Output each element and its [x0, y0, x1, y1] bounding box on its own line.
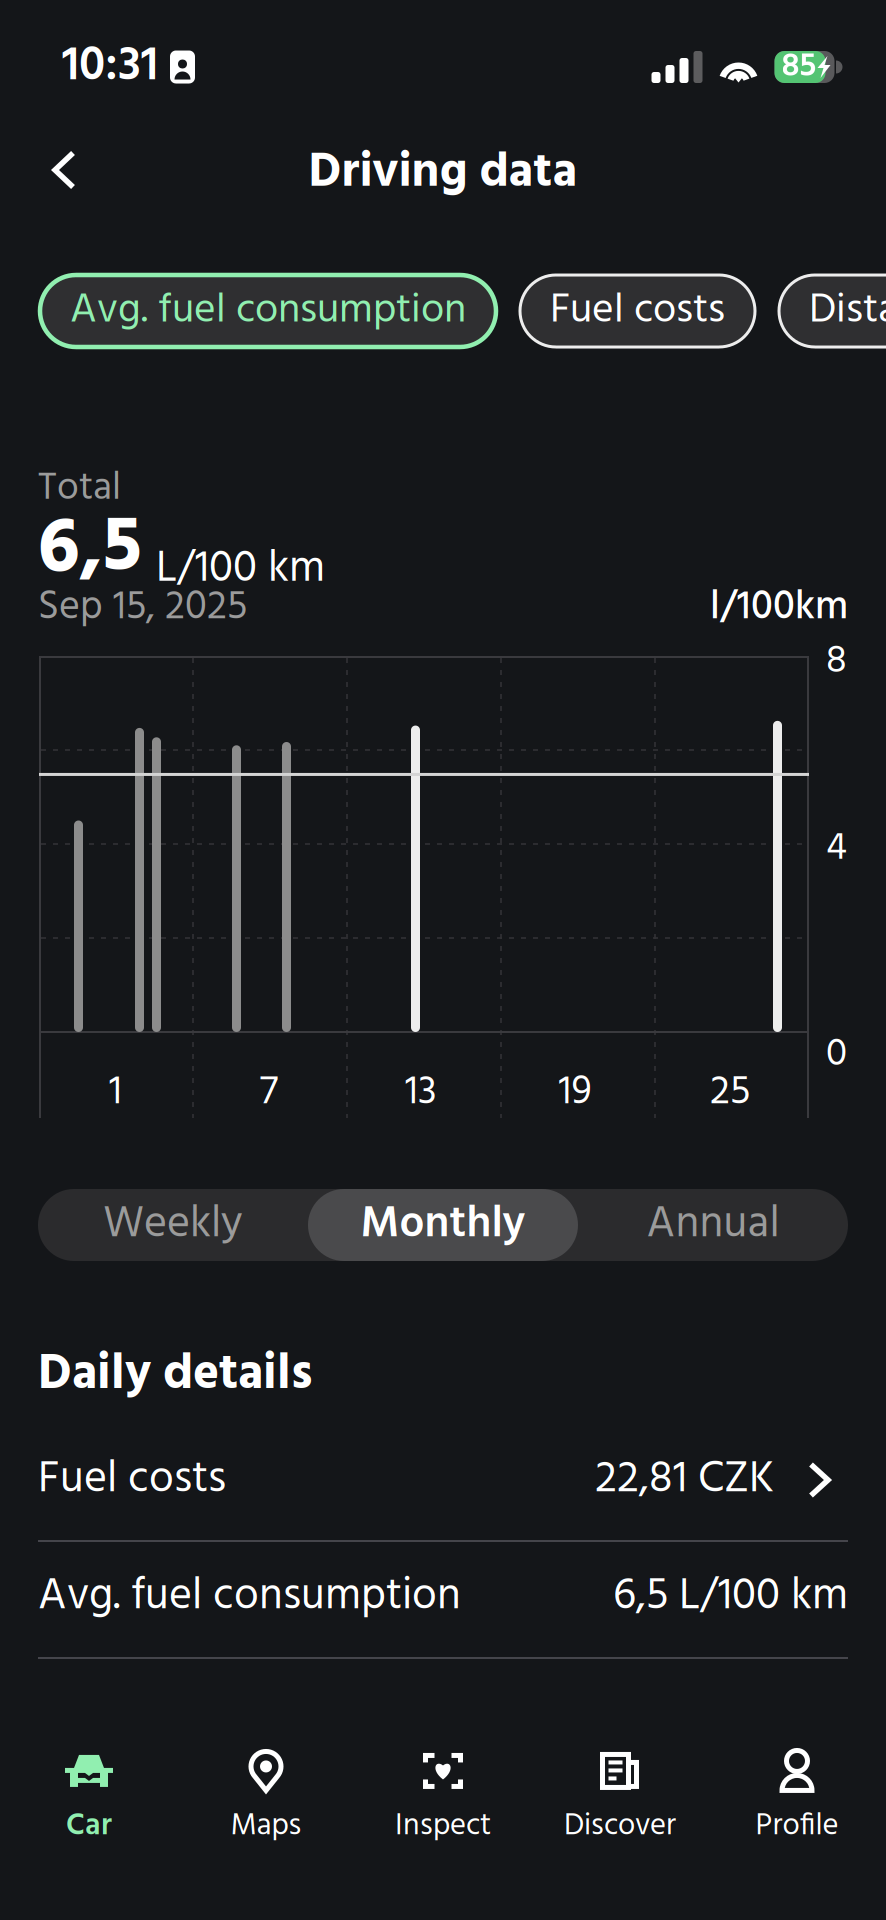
staticText: Avg. fuel consumption — [38, 1562, 461, 1632]
staticText: Distance — [809, 278, 886, 344]
button[interactable]: Annual — [578, 1189, 848, 1261]
staticText: 7 — [260, 1061, 278, 1125]
staticText: 6,5 — [38, 488, 142, 612]
staticText: Discover — [564, 1802, 676, 1851]
button[interactable]: Weekly — [38, 1189, 308, 1261]
staticText: Avg. fuel consumption — [70, 278, 466, 344]
staticText: Inspect — [395, 1802, 491, 1851]
staticText: L/100 km — [156, 534, 325, 605]
button[interactable]: Discover — [531, 1752, 708, 1852]
staticText: Car — [66, 1802, 112, 1851]
staticText: Sep 15, 2025 — [38, 576, 247, 640]
button[interactable]: Car — [0, 1752, 177, 1852]
staticText: 6,5 L/100 km — [613, 1562, 848, 1632]
staticText: Profile — [755, 1802, 838, 1851]
staticText: 25 — [710, 1061, 750, 1125]
button[interactable]: Avg. fuel consumption — [38, 1549, 848, 1659]
staticText: Weekly — [103, 1190, 243, 1260]
staticText: Maps — [230, 1802, 301, 1851]
button[interactable]: Inspect — [354, 1752, 531, 1852]
staticText: Driving data — [308, 135, 577, 212]
button[interactable]: Maps — [177, 1752, 354, 1852]
staticText: 13 — [405, 1061, 437, 1125]
staticText: 0 — [826, 1024, 847, 1086]
staticText: Monthly — [360, 1190, 525, 1260]
staticText: 10:31 — [62, 29, 158, 105]
staticText: 1 — [109, 1061, 122, 1125]
staticText: 4 — [826, 818, 847, 880]
staticText: Fuel costs — [38, 1445, 226, 1515]
staticText: 85 — [781, 40, 816, 94]
button[interactable]: Back — [0, 122, 110, 218]
button[interactable]: Fuel costs — [520, 275, 755, 347]
button[interactable]: Fuel costs — [38, 1432, 848, 1542]
staticText: Daily details — [38, 1336, 313, 1415]
staticText: Fuel costs — [550, 278, 725, 344]
staticText: 22,81 CZK — [595, 1445, 774, 1515]
button[interactable]: Profile — [708, 1752, 885, 1852]
staticText: Total — [38, 458, 121, 520]
staticText: 19 — [558, 1061, 591, 1125]
staticText: 8 — [826, 631, 847, 693]
staticText: Annual — [646, 1190, 779, 1260]
button[interactable]: Avg. fuel consumption — [40, 275, 496, 347]
button[interactable]: Distance — [779, 275, 886, 347]
staticText: l/100km — [710, 576, 848, 640]
button[interactable]: Monthly — [308, 1189, 578, 1261]
